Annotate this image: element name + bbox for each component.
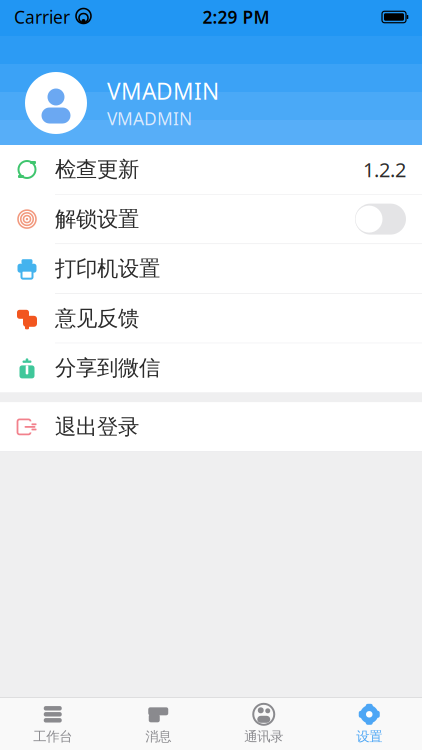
staticText: 分享到微信 bbox=[55, 355, 160, 381]
button[interactable]: 设置 bbox=[316, 699, 422, 749]
staticText: VMADMIN bbox=[107, 107, 192, 130]
button[interactable]: 退出登录 bbox=[0, 402, 422, 451]
staticText: 打印机设置 bbox=[55, 256, 160, 282]
staticText: 通讯录 bbox=[244, 728, 283, 745]
button[interactable]: 通讯录 bbox=[211, 699, 316, 749]
staticText: 消息 bbox=[145, 728, 171, 745]
button[interactable]: 检查更新 bbox=[0, 145, 422, 194]
button[interactable]: 分享到微信 bbox=[0, 343, 422, 392]
button[interactable]: 意见反馈 bbox=[0, 294, 422, 343]
staticText: 设置 bbox=[356, 728, 382, 745]
staticText: Carrier bbox=[14, 5, 70, 28]
staticText: 检查更新 bbox=[55, 156, 139, 183]
staticText: 工作台 bbox=[33, 728, 72, 745]
button[interactable]: 打印机设置 bbox=[0, 244, 422, 293]
button[interactable]: 工作台 bbox=[0, 699, 105, 749]
staticText: VMADMIN bbox=[107, 76, 219, 106]
staticText: 1.2.2 bbox=[363, 156, 406, 183]
staticText: 解锁设置 bbox=[55, 206, 139, 232]
button[interactable]: 解锁设置 bbox=[0, 195, 422, 244]
button[interactable]: 消息 bbox=[105, 699, 211, 749]
staticText: 意见反馈 bbox=[55, 305, 139, 331]
staticText: 2:29 PM bbox=[202, 5, 269, 28]
staticText: 退出登录 bbox=[55, 414, 139, 440]
